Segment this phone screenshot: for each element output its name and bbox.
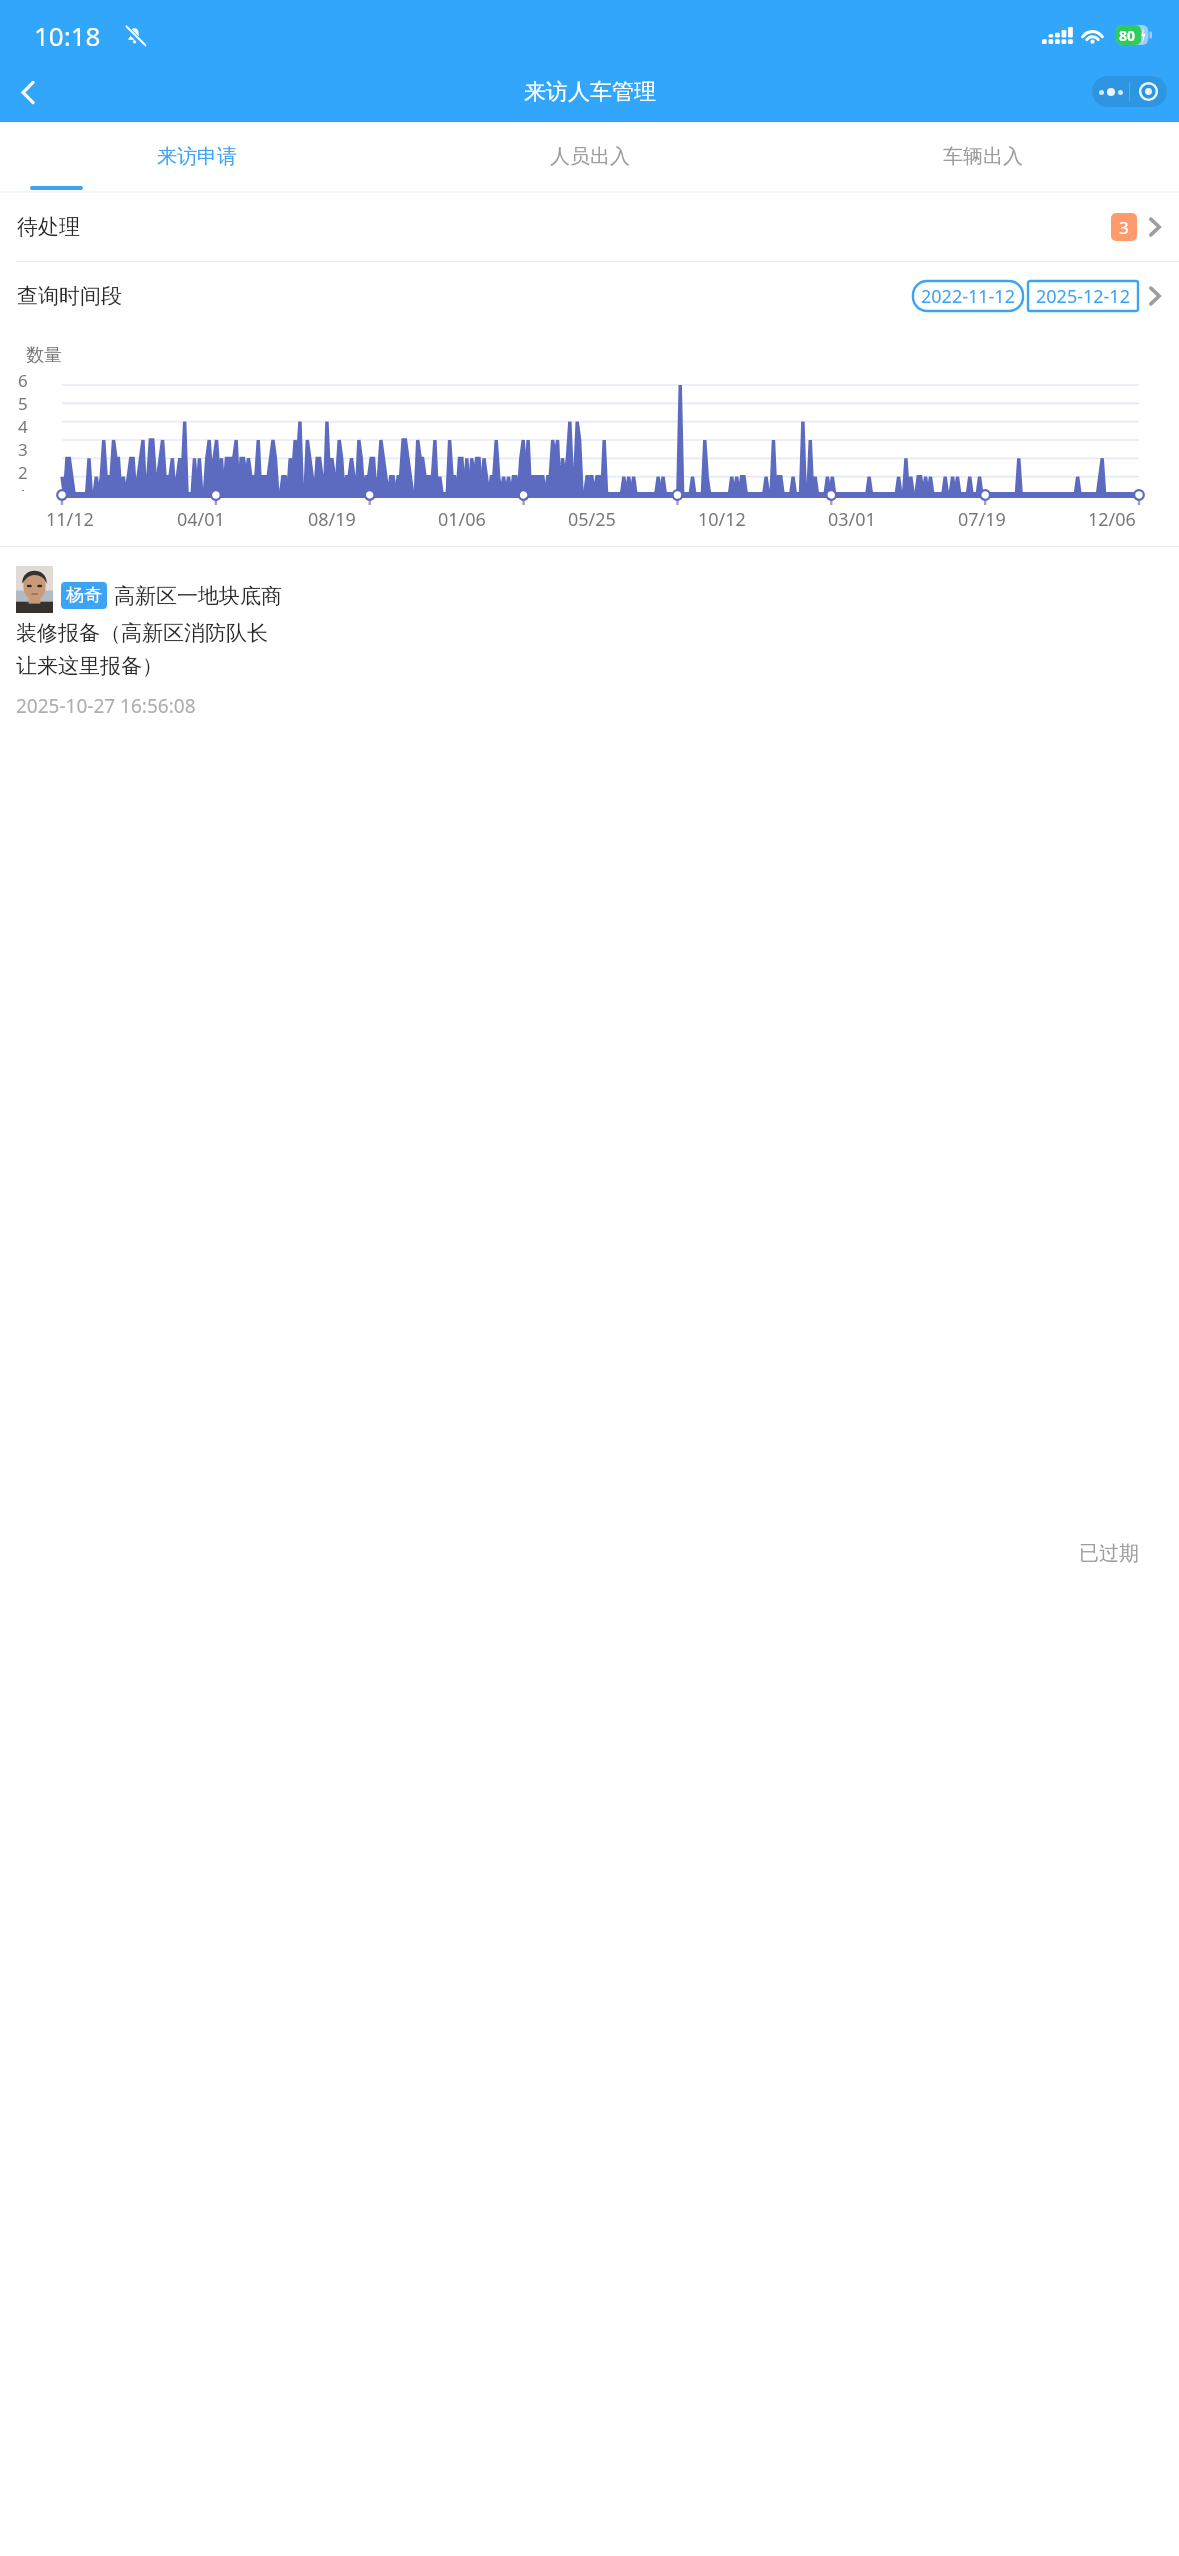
button[interactable]: 查询时间段 [0, 262, 1179, 330]
staticText: 已过期 [1079, 1541, 1139, 1566]
staticText: 高新区一地块底商 [114, 583, 282, 609]
staticText: 来访人车管理 [524, 78, 656, 106]
staticText: 10:18 [34, 18, 101, 53]
staticText: 待处理 [17, 214, 80, 240]
staticText: 1 [18, 484, 28, 491]
staticText: 2 [18, 461, 28, 484]
staticText: 03/01 [828, 507, 876, 532]
staticText: 4 [18, 415, 28, 438]
staticText: 6 [18, 369, 28, 392]
staticText: 让来这里报备） [16, 653, 163, 679]
staticText: 2025-10-27 16:56:08 [16, 693, 196, 719]
staticText: 3 [18, 438, 28, 461]
staticText: 10/12 [698, 507, 746, 532]
staticText: 01/06 [438, 507, 486, 532]
button[interactable]: 来访申请 [0, 122, 393, 191]
staticText: 查询时间段 [17, 283, 122, 309]
staticText: 07/19 [958, 507, 1006, 532]
staticText: 3 [1119, 216, 1129, 239]
staticText: 08/19 [308, 507, 356, 532]
button[interactable]: 车辆出入 [786, 122, 1179, 191]
staticText: 11/12 [46, 507, 94, 532]
button[interactable]: Menu [1092, 76, 1167, 107]
staticText: 装修报备（高新区消防队长 [16, 620, 268, 646]
button[interactable]: 杨奇 [0, 551, 1179, 2556]
staticText: 5 [18, 392, 28, 415]
staticText: 来访申请 [157, 144, 237, 169]
button[interactable]: 人员出入 [393, 122, 786, 191]
staticText: 2025-12-12 [1036, 284, 1130, 309]
staticText: 12/06 [1088, 507, 1136, 532]
staticText: 杨奇 [66, 584, 102, 607]
staticText: 车辆出入 [943, 144, 1023, 169]
staticText: 05/25 [568, 507, 616, 532]
staticText: 2022-11-12 [921, 284, 1015, 309]
staticText: 80 [1119, 26, 1136, 45]
button[interactable]: Back [0, 64, 56, 120]
staticText: 人员出入 [550, 144, 630, 169]
staticText: 数量 [26, 344, 62, 367]
button[interactable]: 待处理 [0, 193, 1179, 261]
staticText: 04/01 [177, 507, 225, 532]
